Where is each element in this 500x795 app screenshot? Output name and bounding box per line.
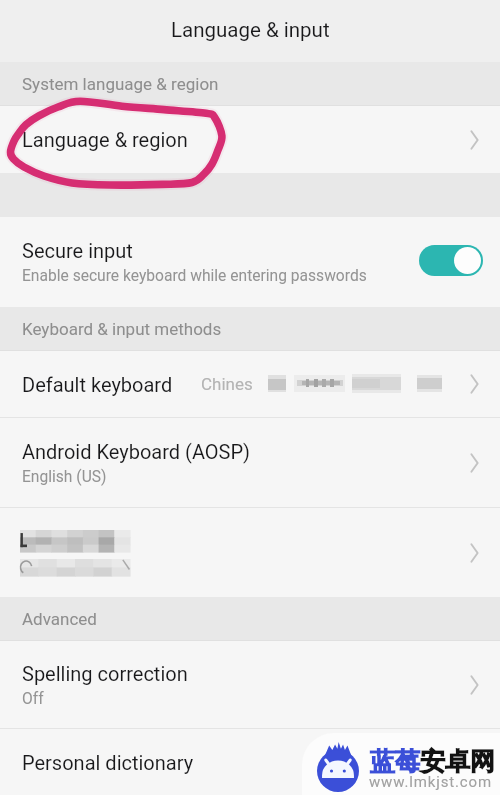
staticText: Language & input bbox=[171, 18, 330, 42]
staticText: www.lmkjst.com bbox=[369, 773, 492, 791]
staticText: English (US) bbox=[22, 468, 107, 486]
staticText: System language & region bbox=[22, 74, 219, 94]
button[interactable]: Language & region bbox=[0, 106, 500, 173]
staticText: Spelling correction bbox=[22, 662, 188, 685]
staticText: Personal dictionary bbox=[22, 751, 194, 774]
other: Open bbox=[468, 453, 481, 473]
staticText: Keyboard & input methods bbox=[22, 319, 222, 339]
staticText: Secure input bbox=[22, 239, 133, 262]
button[interactable]: Default keyboard bbox=[0, 351, 500, 417]
button[interactable]: Open bbox=[0, 508, 500, 597]
button[interactable]: Secure input bbox=[0, 217, 500, 307]
staticText: 安卓网 bbox=[420, 746, 495, 777]
staticText: Advanced bbox=[22, 609, 97, 629]
staticText: Enable secure keyboard while entering pa… bbox=[22, 267, 367, 285]
staticText: Chines bbox=[201, 374, 253, 394]
staticText: Language & region bbox=[22, 128, 188, 151]
other: Open bbox=[468, 130, 481, 150]
button[interactable]: Android Keyboard (AOSP) bbox=[0, 418, 500, 507]
button[interactable]: Spelling correction bbox=[0, 641, 500, 728]
other: Open bbox=[468, 675, 481, 695]
other: Open bbox=[468, 543, 481, 563]
staticText: Android Keyboard (AOSP) bbox=[22, 440, 251, 463]
staticText: 蓝莓 bbox=[370, 746, 420, 777]
staticText: Off bbox=[22, 690, 44, 708]
staticText: Default keyboard bbox=[22, 373, 173, 396]
button[interactable]: Secure input toggle, on bbox=[419, 245, 483, 276]
other: Open bbox=[468, 752, 481, 772]
other: Open bbox=[468, 374, 481, 394]
button[interactable]: Personal dictionary bbox=[0, 729, 500, 795]
